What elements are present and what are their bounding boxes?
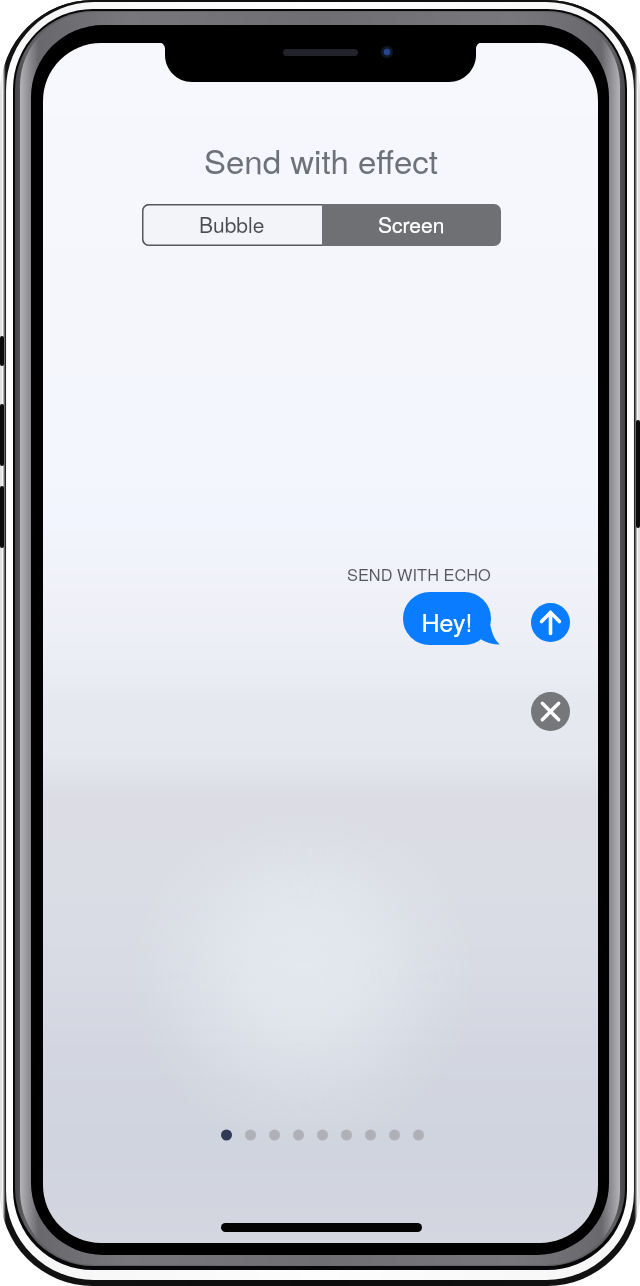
staticText: Screen bbox=[378, 209, 445, 239]
button[interactable]: Hey! bbox=[403, 592, 501, 646]
button[interactable]: Send bbox=[531, 603, 570, 642]
staticText: Send with effect bbox=[204, 136, 438, 183]
staticText: Hey! bbox=[403, 603, 491, 645]
button[interactable]: Cancel bbox=[531, 692, 570, 731]
staticText: SEND WITH ECHO bbox=[347, 562, 491, 585]
button[interactable]: Screen bbox=[322, 204, 501, 246]
staticText: Bubble bbox=[199, 209, 265, 239]
button[interactable]: Bubble bbox=[142, 204, 322, 246]
